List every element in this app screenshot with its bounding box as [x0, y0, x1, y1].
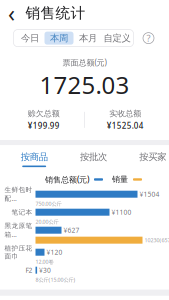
- button[interactable]: 按商品: [4, 145, 64, 167]
- staticText: 12.00卷: [35, 258, 53, 265]
- staticText: ?: [146, 32, 150, 44]
- staticText: 票面总额(元): [62, 57, 106, 68]
- staticText: 实收总额: [109, 109, 141, 118]
- staticText: F2: [25, 266, 32, 275]
- staticText: ¥199.99: [28, 120, 60, 131]
- staticText: 笔记本: [11, 208, 32, 216]
- button[interactable]: 本周: [44, 32, 73, 45]
- staticText: 销售总额(元): [45, 174, 89, 185]
- staticText: 按买家: [139, 151, 166, 163]
- button[interactable]: 本月: [73, 32, 102, 45]
- staticText: ‹: [8, 0, 15, 28]
- button[interactable]: 今日: [15, 32, 44, 45]
- staticText: 销售统计: [25, 4, 85, 22]
- button[interactable]: 按批次: [64, 145, 123, 167]
- staticText: 赊欠总额: [28, 109, 60, 118]
- button[interactable]: 按买家: [123, 145, 169, 167]
- staticText: ¥1504: [139, 190, 159, 199]
- staticText: 生鲜包时配…: [4, 186, 32, 203]
- staticText: 本周: [50, 32, 68, 44]
- button[interactable]: Back: [3, 3, 19, 23]
- staticText: 1725.03: [39, 69, 129, 101]
- staticText: 销量: [112, 174, 128, 184]
- staticText: 今日: [21, 32, 39, 44]
- staticText: 自定义: [103, 32, 130, 44]
- staticText: ¥120: [46, 248, 62, 257]
- staticText: 按商品: [21, 151, 48, 163]
- staticText: 按批次: [80, 151, 107, 163]
- staticText: 20.00公斤: [35, 218, 58, 225]
- button[interactable]: 自定义: [102, 32, 131, 45]
- staticText: ¥1100: [111, 208, 131, 217]
- staticText: ¥627: [63, 226, 79, 235]
- staticText: 8公斤(15.00公斤): [35, 276, 75, 283]
- staticText: 本月: [79, 32, 97, 44]
- staticText: 植护压花面巾: [4, 244, 32, 260]
- staticText: 750.00公斤: [35, 200, 61, 207]
- staticText: 黑龙原笔箱…: [4, 222, 32, 239]
- staticText: 10230(657.00斤): [144, 237, 169, 244]
- button[interactable]: Help: [141, 31, 155, 45]
- staticText: ¥1525.04: [107, 120, 144, 131]
- staticText: ¥30: [39, 266, 51, 275]
